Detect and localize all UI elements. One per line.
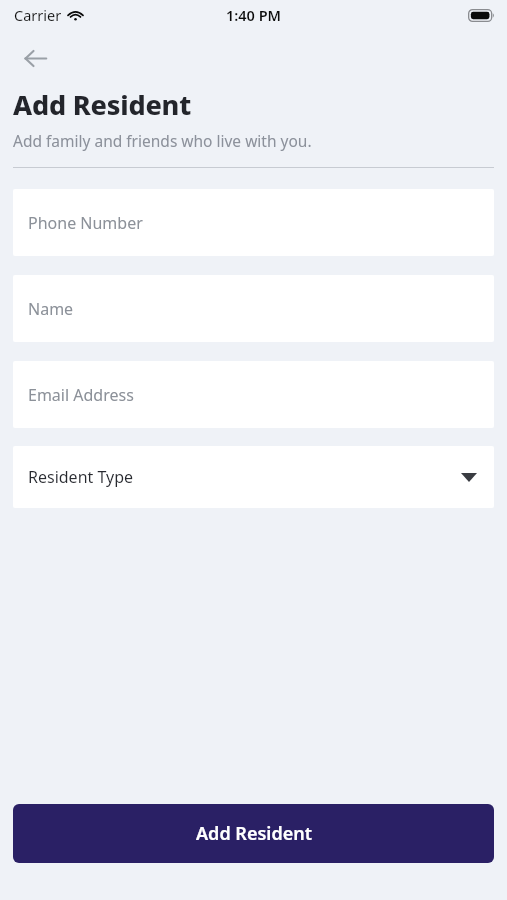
staticText: Phone Number [28, 212, 143, 234]
staticText: Add family and friends who live with you… [13, 130, 312, 151]
staticText: Name [28, 298, 74, 320]
button[interactable]: Name [13, 275, 494, 342]
staticText: Add Resident [196, 821, 312, 846]
staticText: Carrier [14, 5, 62, 25]
button[interactable]: Resident Type [13, 446, 494, 508]
staticText: Email Address [28, 384, 134, 406]
button[interactable]: Phone Number [13, 189, 494, 256]
staticText: 1:40 PM [226, 5, 282, 25]
button[interactable]: Add Resident [13, 804, 494, 863]
button[interactable]: Email Address [13, 361, 494, 428]
staticText: Add Resident [13, 86, 192, 123]
button[interactable]: Back [13, 36, 57, 80]
staticText: Resident Type [28, 466, 134, 488]
